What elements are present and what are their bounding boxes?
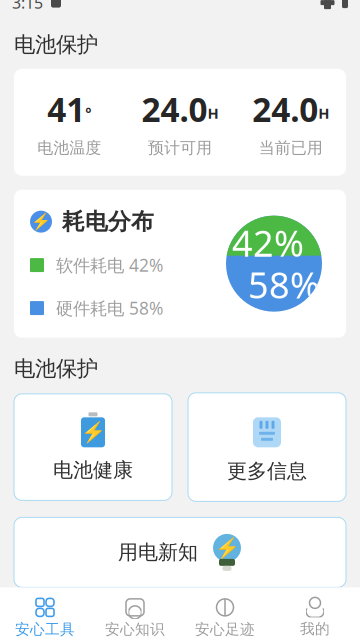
staticText: 耗电分布	[62, 208, 154, 235]
staticText: 更多信息	[227, 459, 307, 483]
staticText: °	[85, 103, 91, 123]
staticText: 电池保护	[14, 356, 98, 382]
staticText: 电池温度	[37, 138, 101, 158]
staticText: ⚡	[214, 536, 239, 559]
staticText: 当前已用	[259, 138, 323, 158]
staticText: 电池保护	[14, 32, 98, 58]
staticText: H	[318, 103, 329, 123]
staticText: 用电新知	[118, 540, 198, 565]
staticText: 24.0	[141, 87, 207, 131]
staticText: 我的	[300, 620, 330, 638]
button[interactable]: 我的	[270, 592, 360, 640]
staticText: 24.0	[252, 87, 318, 131]
button[interactable]: 安心工具	[0, 591, 90, 640]
staticText: 电池健康	[53, 458, 133, 482]
staticText: 安心工具	[15, 620, 75, 638]
staticText: ⚡	[31, 212, 51, 231]
staticText: 42%	[232, 219, 304, 267]
button[interactable]: 安心知识	[90, 591, 180, 640]
staticText: ⚡	[80, 421, 105, 444]
staticText: 41	[47, 87, 85, 131]
staticText: 58%	[248, 261, 320, 308]
staticText: 硬件耗电 58%	[56, 297, 163, 320]
button[interactable]: 用电新知	[14, 517, 346, 587]
staticText: 预计可用	[148, 138, 212, 158]
staticText: H	[207, 103, 218, 123]
button[interactable]: 安心足迹	[180, 591, 270, 640]
staticText: 3:15	[12, 0, 43, 13]
button[interactable]: ⚡	[14, 394, 172, 500]
staticText: 安心知识	[105, 620, 165, 638]
button[interactable]: 更多信息	[188, 393, 346, 501]
staticText: 软件耗电 42%	[56, 254, 163, 277]
staticText: 安心足迹	[195, 620, 255, 638]
